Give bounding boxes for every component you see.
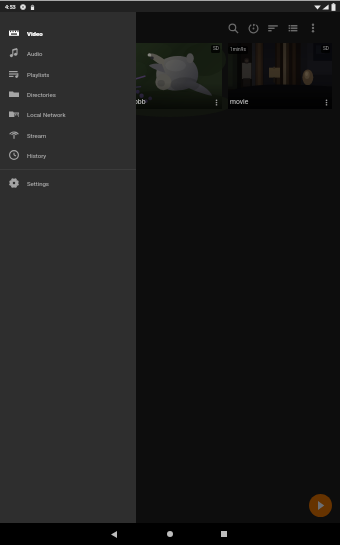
button[interactable]: Stream xyxy=(0,125,136,145)
button[interactable]: Directories xyxy=(0,84,136,104)
staticText: movie xyxy=(230,98,249,106)
staticText: Directories xyxy=(27,91,56,98)
button[interactable]: SD xyxy=(118,43,222,109)
button[interactable]: Sort xyxy=(263,16,283,40)
button[interactable]: Audio xyxy=(0,43,136,63)
button[interactable]: Settings xyxy=(0,173,136,193)
staticText: 4:53 xyxy=(5,4,16,10)
staticText: bbb xyxy=(134,98,146,106)
staticText: Video xyxy=(27,30,43,37)
staticText: SD xyxy=(213,46,219,52)
button[interactable]: 1min9s xyxy=(228,43,332,109)
button[interactable]: More options xyxy=(320,95,332,109)
button[interactable]: More options xyxy=(210,95,222,109)
button[interactable]: History xyxy=(243,16,263,40)
button[interactable]: Search xyxy=(223,16,243,40)
button[interactable]: History xyxy=(0,145,136,165)
button[interactable]: Home xyxy=(160,523,180,545)
button[interactable]: More options xyxy=(303,16,323,40)
staticText: Local Network xyxy=(27,111,66,118)
staticText: Playlists xyxy=(27,71,50,78)
button[interactable]: Recent apps xyxy=(214,523,234,545)
button[interactable]: Playlists xyxy=(0,64,136,84)
button[interactable]: Back xyxy=(104,523,124,545)
button[interactable]: Play xyxy=(309,494,332,517)
button[interactable]: Local Network xyxy=(0,104,136,124)
staticText: 1min9s xyxy=(230,47,246,53)
staticText: SD xyxy=(323,46,329,52)
staticText: Stream xyxy=(27,132,47,139)
button[interactable]: Display mode xyxy=(283,16,303,40)
staticText: Audio xyxy=(27,50,43,57)
staticText: History xyxy=(27,152,47,159)
button[interactable]: Video xyxy=(0,23,136,43)
staticText: Settings xyxy=(27,180,49,187)
